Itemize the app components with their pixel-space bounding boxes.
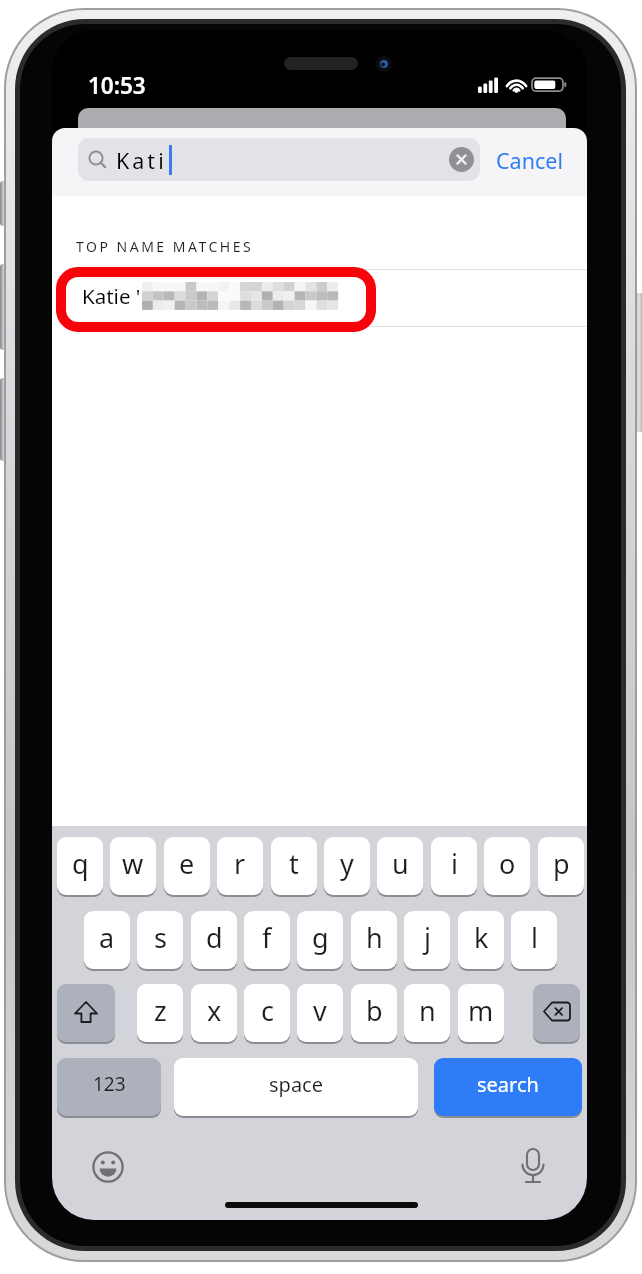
- button[interactable]: 123: [57, 1058, 161, 1116]
- staticText: c: [261, 992, 274, 1029]
- button[interactable]: i: [431, 837, 477, 895]
- staticText: i: [451, 845, 458, 882]
- button[interactable]: e: [164, 837, 210, 895]
- staticText: t: [289, 845, 299, 882]
- button[interactable]: w: [110, 837, 156, 895]
- staticText: x: [207, 992, 222, 1029]
- button[interactable]: m: [458, 984, 504, 1042]
- button[interactable]: [90, 1149, 126, 1185]
- button[interactable]: a: [84, 911, 130, 969]
- staticText: f: [262, 919, 272, 956]
- staticText: y: [340, 845, 354, 882]
- button[interactable]: o: [484, 837, 530, 895]
- staticText: a: [99, 919, 115, 956]
- button[interactable]: n: [404, 984, 450, 1042]
- button[interactable]: y: [324, 837, 370, 895]
- staticText: 10:53: [88, 70, 146, 101]
- button[interactable]: [78, 138, 480, 181]
- button[interactable]: l: [511, 911, 557, 969]
- staticText: 123: [93, 1071, 126, 1097]
- staticText: Kati: [116, 146, 167, 175]
- button[interactable]: f: [244, 911, 290, 969]
- staticText: o: [499, 845, 516, 882]
- button[interactable]: Cancel: [496, 146, 563, 175]
- staticText: l: [531, 919, 538, 956]
- staticText: k: [474, 919, 489, 956]
- button[interactable]: j: [404, 911, 450, 969]
- button[interactable]: [57, 984, 115, 1042]
- button[interactable]: p: [538, 837, 584, 895]
- button[interactable]: v: [297, 984, 343, 1042]
- button[interactable]: g: [297, 911, 343, 969]
- staticText: u: [392, 845, 409, 882]
- staticText: n: [419, 992, 436, 1029]
- staticText: TOP NAME MATCHES: [76, 237, 254, 256]
- button[interactable]: [449, 147, 474, 172]
- staticText: m: [468, 992, 494, 1029]
- button[interactable]: q: [57, 837, 103, 895]
- button[interactable]: c: [244, 984, 290, 1042]
- button[interactable]: z: [137, 984, 183, 1042]
- button[interactable]: r: [217, 837, 263, 895]
- staticText: search: [477, 1071, 539, 1098]
- button[interactable]: b: [351, 984, 397, 1042]
- button[interactable]: d: [191, 911, 237, 969]
- button[interactable]: Katie ': [82, 282, 141, 310]
- button[interactable]: t: [271, 837, 317, 895]
- staticText: r: [234, 845, 246, 882]
- staticText: s: [154, 919, 167, 956]
- button[interactable]: [514, 1147, 552, 1189]
- staticText: d: [206, 919, 223, 956]
- button[interactable]: x: [191, 984, 237, 1042]
- staticText: b: [366, 992, 383, 1029]
- button[interactable]: [533, 984, 580, 1042]
- staticText: p: [553, 845, 570, 882]
- staticText: Cancel: [496, 146, 563, 175]
- staticText: z: [154, 992, 167, 1029]
- staticText: q: [72, 845, 89, 882]
- staticText: g: [312, 919, 329, 956]
- staticText: v: [313, 992, 327, 1029]
- button[interactable]: h: [351, 911, 397, 969]
- staticText: j: [424, 919, 431, 956]
- staticText: w: [122, 845, 144, 882]
- staticText: e: [179, 845, 195, 882]
- button[interactable]: search: [434, 1058, 582, 1116]
- button[interactable]: u: [377, 837, 423, 895]
- button[interactable]: k: [458, 911, 504, 969]
- staticText: Katie ': [82, 282, 141, 310]
- staticText: space: [269, 1071, 323, 1098]
- button[interactable]: space: [174, 1058, 418, 1116]
- staticText: h: [366, 919, 383, 956]
- button[interactable]: s: [137, 911, 183, 969]
